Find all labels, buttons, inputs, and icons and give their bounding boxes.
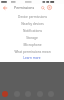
- button[interactable]: What permissions mean: [0, 48, 64, 55]
- button[interactable]: Search: [40, 4, 46, 11]
- staticText: What permissions mean: [14, 50, 51, 54]
- button[interactable]: Back: [1, 4, 8, 11]
- button[interactable]: Storage: [0, 34, 64, 41]
- staticText: Nearby devices: [21, 22, 44, 26]
- staticText: Microphone: [23, 43, 42, 47]
- button[interactable]: Phone: [14, 91, 20, 97]
- button[interactable]: Learn more: [0, 55, 64, 61]
- button[interactable]: Nearby devices: [0, 20, 64, 27]
- button[interactable]: Microphone: [0, 41, 64, 48]
- staticText: Learn more: [23, 56, 41, 60]
- button[interactable]: Camera: [25, 91, 31, 97]
- button[interactable]: Settings: [48, 91, 54, 97]
- button[interactable]: Messages: [2, 91, 8, 97]
- staticText: Storage: [26, 36, 38, 40]
- staticText: Device permissions: [18, 15, 47, 19]
- button[interactable]: Device permissions: [0, 13, 64, 20]
- button[interactable]: Photos: [37, 91, 43, 97]
- staticText: Notifications: [23, 29, 42, 33]
- button[interactable]: More options: [46, 4, 53, 11]
- staticText: Permissions: [14, 5, 35, 10]
- button[interactable]: Notifications: [0, 27, 64, 34]
